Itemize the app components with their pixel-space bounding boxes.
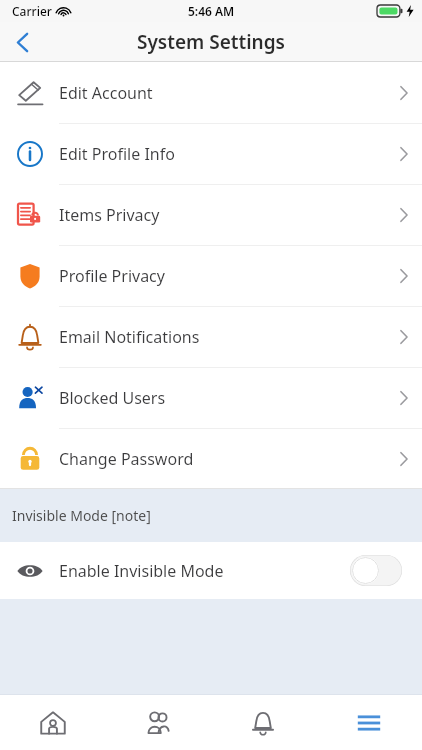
button[interactable]: Edit Profile Info — [0, 123, 422, 184]
staticText: Carrier — [12, 3, 52, 19]
button[interactable]: Enable Invisible Mode — [0, 542, 422, 599]
staticText: Invisible Mode [note] — [12, 506, 151, 525]
staticText: System Settings — [137, 29, 285, 55]
staticText: 5:46 AM — [188, 3, 235, 19]
staticText: Email Notifications — [59, 326, 200, 348]
staticText: Blocked Users — [59, 387, 166, 409]
staticText: Profile Privacy — [59, 265, 165, 287]
staticText: Enable Invisible Mode — [59, 560, 224, 582]
button[interactable]: Edit Account — [0, 62, 422, 123]
button[interactable]: Items Privacy — [0, 184, 422, 245]
button[interactable]: Friends — [105, 695, 210, 750]
staticText: Change Password — [59, 448, 194, 470]
staticText: Items Privacy — [59, 204, 160, 226]
staticText: Edit Account — [59, 82, 153, 104]
button[interactable]: Profile Privacy — [0, 245, 422, 306]
button[interactable]: Blocked Users — [0, 367, 422, 428]
button[interactable]: Menu — [316, 695, 422, 750]
button[interactable]: Back — [0, 22, 44, 62]
button[interactable]: Email Notifications — [0, 306, 422, 367]
staticText: Edit Profile Info — [59, 143, 175, 165]
button[interactable]: Change Password — [0, 428, 422, 489]
button[interactable]: Home — [0, 695, 105, 750]
button[interactable]: Enable Invisible Mode toggle — [350, 555, 402, 586]
button[interactable]: Notifications — [210, 695, 316, 750]
